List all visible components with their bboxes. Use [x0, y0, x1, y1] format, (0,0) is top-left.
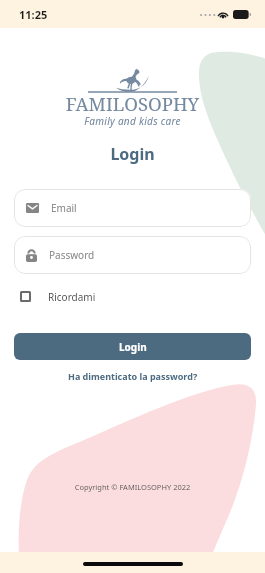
- staticText: FAMILOSOPHY: [0, 91, 265, 116]
- staticText: Copyright © FAMILOSOPHY 2022: [0, 482, 265, 492]
- staticText: Login: [0, 143, 265, 165]
- staticText: Email: [51, 201, 77, 215]
- staticText: Login: [119, 340, 147, 354]
- button[interactable]: Login: [14, 333, 251, 360]
- staticText: Family and kids care: [0, 114, 265, 128]
- staticText: Password: [49, 248, 95, 262]
- button[interactable]: Ricordami: [20, 287, 265, 306]
- button[interactable]: Ha dimenticato la password?: [62, 367, 204, 385]
- button[interactable]: Email: [14, 189, 251, 227]
- staticText: Ricordami: [48, 290, 96, 304]
- staticText: 11:25: [19, 7, 48, 22]
- button[interactable]: Password: [14, 236, 251, 274]
